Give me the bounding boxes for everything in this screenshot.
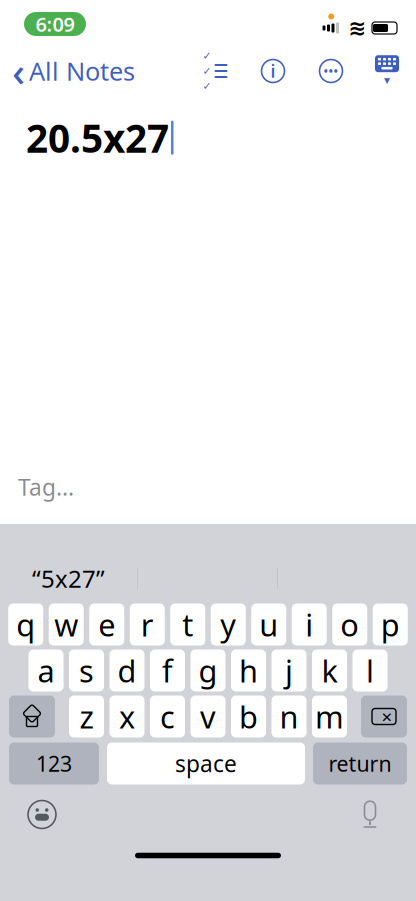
staticText: × — [381, 704, 392, 729]
staticText: s — [79, 650, 94, 691]
button[interactable]: b — [231, 695, 266, 737]
staticText: 123 — [36, 749, 72, 778]
button[interactable]: r — [130, 603, 165, 645]
button[interactable]: p — [373, 603, 408, 645]
staticText: q — [16, 604, 35, 645]
button[interactable]: s — [69, 649, 104, 691]
staticText: w — [54, 604, 78, 645]
button[interactable]: a — [28, 649, 63, 691]
staticText: ‹ — [12, 44, 25, 97]
button[interactable]: h — [231, 649, 266, 691]
staticText: 6:09 — [35, 11, 74, 37]
button[interactable]: z — [69, 695, 104, 737]
button[interactable]: Info — [260, 58, 286, 84]
staticText: All Notes — [29, 54, 135, 88]
button[interactable]: Hide Keyboard — [374, 57, 400, 85]
button[interactable]: k — [312, 649, 347, 691]
staticText: ✓ — [202, 80, 211, 92]
button[interactable]: e — [89, 603, 124, 645]
staticText: r — [141, 604, 154, 645]
staticText: j — [285, 650, 293, 691]
staticText: space — [175, 748, 237, 778]
staticText: c — [160, 696, 175, 737]
button[interactable]: u — [251, 603, 286, 645]
button[interactable]: n — [271, 695, 306, 737]
staticText: i — [270, 59, 275, 82]
staticText: g — [198, 650, 217, 691]
staticText: d — [117, 650, 136, 691]
staticText: f — [162, 650, 173, 691]
staticText: Tag... — [18, 472, 74, 502]
button[interactable]: Shift — [9, 695, 55, 737]
staticText: ▾ — [384, 73, 390, 87]
staticText: v — [200, 696, 216, 737]
button[interactable]: o — [332, 603, 367, 645]
button[interactable]: f — [150, 649, 185, 691]
button[interactable]: c — [150, 695, 185, 737]
button[interactable]: i — [292, 603, 327, 645]
button[interactable]: q — [8, 603, 43, 645]
button[interactable]: Dictation — [350, 794, 390, 834]
button[interactable]: x — [109, 695, 144, 737]
button[interactable]: l — [352, 649, 387, 691]
button[interactable]: Delete — [361, 695, 407, 737]
staticText: e — [98, 604, 115, 645]
button[interactable]: More — [318, 58, 344, 84]
staticText: p — [381, 604, 400, 645]
button[interactable]: m — [312, 695, 347, 737]
button[interactable]: j — [271, 649, 306, 691]
button[interactable]: “5x27” — [0, 556, 137, 600]
staticText: ✓ — [202, 65, 211, 77]
staticText: z — [79, 696, 93, 737]
staticText: h — [239, 650, 258, 691]
staticText: ≋ — [348, 16, 366, 40]
staticText: n — [279, 696, 298, 737]
button[interactable]: ‹ — [0, 49, 135, 93]
button[interactable]: y — [211, 603, 246, 645]
staticText: b — [239, 696, 258, 737]
staticText: a — [37, 650, 54, 691]
staticText: ✓ — [202, 50, 211, 62]
staticText: y — [220, 604, 236, 645]
staticText: ••• — [323, 63, 338, 79]
staticText: t — [182, 604, 193, 645]
staticText: x — [119, 696, 135, 737]
button[interactable]: d — [109, 649, 144, 691]
button[interactable]: g — [190, 649, 225, 691]
staticText: 20.5x27 — [26, 112, 169, 163]
staticText: u — [259, 604, 278, 645]
staticText: return — [328, 749, 391, 778]
staticText: o — [340, 604, 359, 645]
button[interactable]: space — [107, 742, 305, 784]
button[interactable]: 123 — [9, 742, 99, 784]
staticText: l — [366, 650, 374, 691]
button[interactable]: Emoji — [22, 794, 62, 834]
button[interactable]: v — [190, 695, 225, 737]
staticText: i — [305, 604, 313, 645]
staticText: m — [315, 696, 344, 737]
staticText: k — [321, 650, 337, 691]
button[interactable]: w — [49, 603, 84, 645]
button[interactable]: Checklist — [202, 59, 228, 83]
button[interactable]: t — [170, 603, 205, 645]
button[interactable]: return — [313, 742, 407, 784]
staticText: “5x27” — [32, 563, 105, 594]
